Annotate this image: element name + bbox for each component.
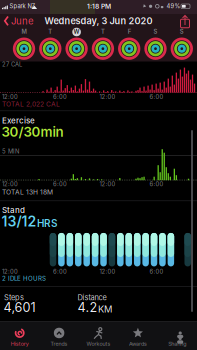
staticText: 49%: [166, 3, 180, 10]
button[interactable]: History: [1, 324, 39, 350]
staticText: Trends: [51, 340, 68, 347]
staticText: T: [101, 28, 105, 35]
staticText: 5 MIN: [2, 148, 19, 155]
staticText: 27 CAL: [2, 61, 22, 68]
button[interactable]: Trends: [40, 324, 78, 350]
staticText: Sharing: [168, 340, 186, 347]
staticText: 13/12: [1, 213, 36, 230]
button[interactable]: June: [0, 15, 34, 27]
button[interactable]: [179, 14, 191, 28]
staticText: TOTAL 2,022 CAL: [2, 100, 60, 108]
staticText: M: [21, 28, 26, 35]
staticText: T: [48, 28, 52, 35]
staticText: Workouts: [86, 340, 110, 347]
staticText: S: [180, 28, 184, 35]
staticText: HRS: [37, 217, 58, 229]
button[interactable]: M: [12, 28, 36, 62]
staticText: Awards: [129, 340, 147, 347]
staticText: 30/30min: [1, 124, 63, 140]
staticText: 6:00: [149, 93, 163, 100]
staticText: Stand: [2, 205, 25, 215]
staticText: History: [11, 340, 29, 347]
staticText: 12:00: [2, 93, 18, 100]
staticText: Distance: [77, 293, 106, 302]
staticText: F: [128, 28, 131, 35]
staticText: Wednesday, 3 Jun 2020: [44, 15, 152, 26]
staticText: 12:00: [2, 181, 18, 188]
staticText: 1:18 PM: [87, 2, 111, 10]
staticText: W: [74, 28, 80, 35]
staticText: 6:00: [53, 181, 67, 188]
staticText: 6:00: [53, 268, 67, 275]
staticText: 12:00: [2, 268, 18, 275]
button[interactable]: Sharing: [158, 324, 196, 350]
staticText: 4.2: [77, 300, 97, 315]
staticText: Exercise: [2, 116, 35, 125]
button[interactable]: W: [65, 28, 89, 62]
button[interactable]: S: [143, 28, 167, 62]
staticText: June: [11, 15, 34, 27]
staticText: 6:00: [149, 268, 163, 275]
staticText: 12:00: [99, 268, 115, 275]
staticText: 2 IDLE HOURS: [2, 275, 46, 282]
staticText: 12:00: [99, 181, 115, 188]
staticText: 6:00: [53, 93, 67, 100]
button[interactable]: Awards: [119, 324, 157, 350]
button[interactable]: T: [91, 28, 115, 62]
staticText: 6:00: [149, 181, 163, 188]
button[interactable]: S: [170, 28, 194, 62]
staticText: KM: [98, 303, 112, 315]
staticText: Steps: [4, 293, 24, 302]
button[interactable]: Workouts: [79, 324, 117, 350]
staticText: S: [153, 28, 157, 35]
button[interactable]: T: [38, 28, 62, 62]
staticText: TOTAL 13H 18M: [2, 188, 53, 196]
button[interactable]: F: [117, 28, 141, 62]
staticText: Spark NZ: [9, 3, 35, 10]
staticText: 12:00: [99, 93, 115, 100]
staticText: 4,601: [3, 300, 35, 315]
